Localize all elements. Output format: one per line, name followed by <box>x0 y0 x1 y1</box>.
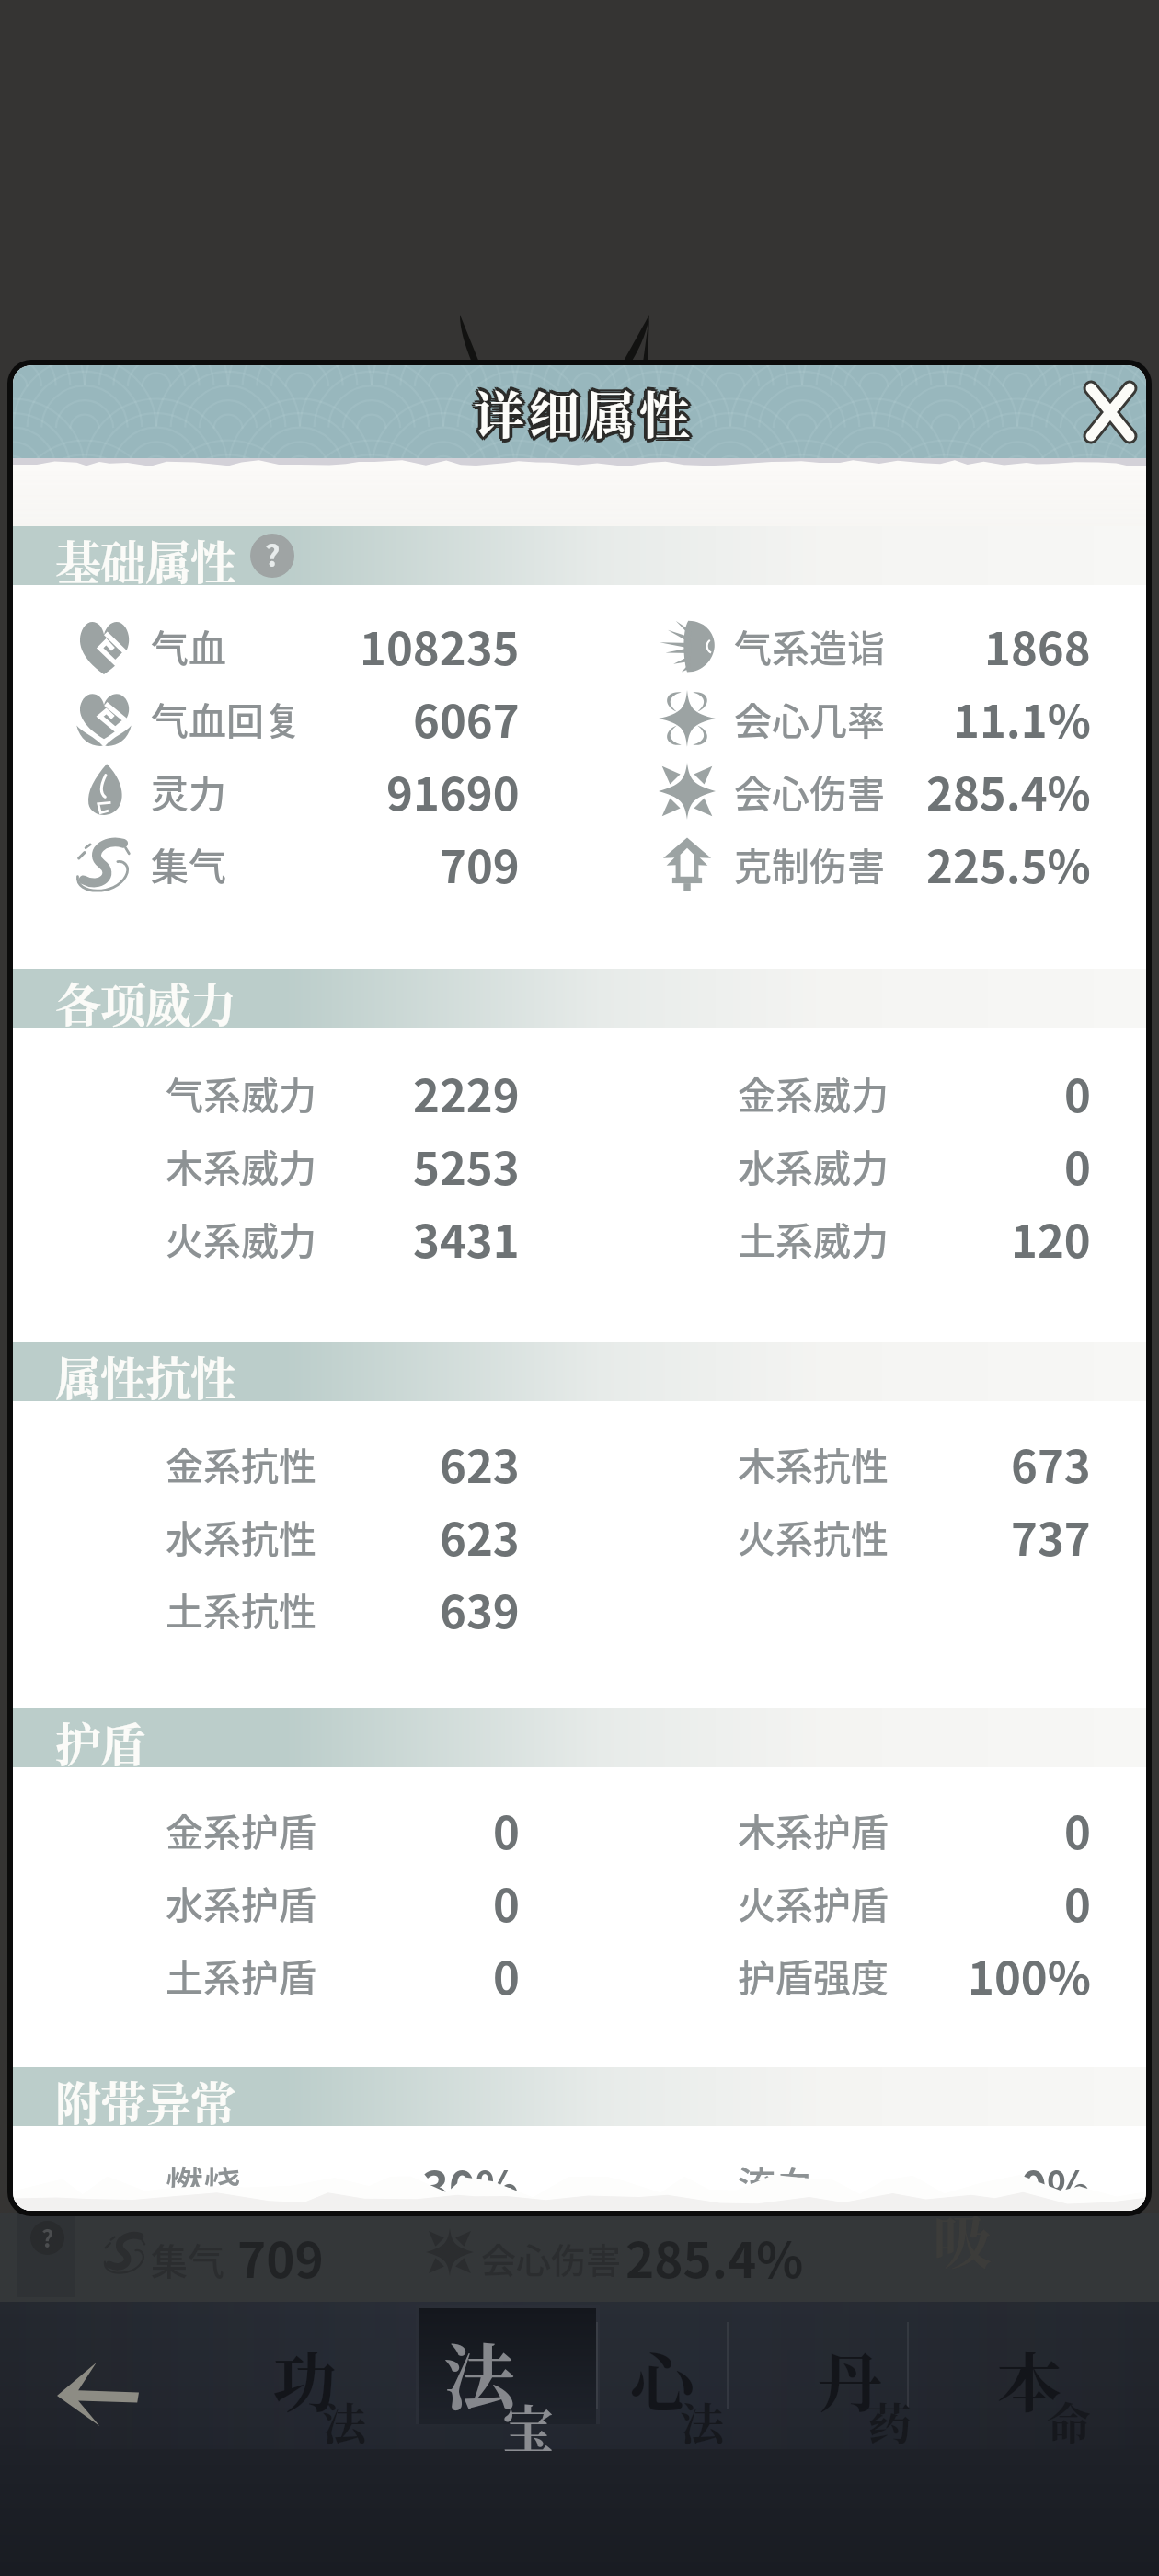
staticText: 木系抗性 <box>738 1436 889 1490</box>
staticText: 100% <box>968 1942 1091 2007</box>
staticText: 法 <box>322 2389 367 2453</box>
staticText: 30% <box>422 2152 520 2211</box>
staticText: 详细属性 <box>471 377 693 450</box>
staticText: 5253 <box>413 1133 520 1198</box>
staticText: 225.5% <box>926 831 1091 896</box>
button[interactable]: 本 <box>968 2305 1133 2466</box>
staticText: 详细属性 <box>473 379 694 452</box>
staticText: 气系威力 <box>166 1065 316 1120</box>
staticText: 燃烧 <box>166 2155 241 2209</box>
staticText: 水系护盾 <box>166 1875 316 1929</box>
button[interactable]: Help <box>250 534 294 578</box>
staticText: 护盾 <box>55 1708 145 1767</box>
staticText: 会心伤害 <box>481 2233 622 2283</box>
staticText: 丹 <box>818 2332 882 2425</box>
staticText: 金系威力 <box>738 1065 889 1120</box>
staticText: 气血回复 <box>151 691 302 745</box>
staticText: 11.1% <box>953 685 1091 751</box>
staticText: 709 <box>237 2222 324 2293</box>
staticText: 0 <box>1064 1060 1091 1125</box>
staticText: 详细属性 <box>470 375 692 448</box>
staticText: 本 <box>997 2332 1061 2425</box>
staticText: 木系威力 <box>166 1138 316 1192</box>
staticText: 心 <box>630 2332 694 2425</box>
staticText: 克制伤害 <box>734 836 885 891</box>
staticText: 120 <box>1011 1205 1091 1271</box>
staticText: 吸 <box>933 2195 992 2280</box>
staticText: 0 <box>493 1797 520 1862</box>
staticText: 灵力 <box>151 764 226 818</box>
staticText: 6067 <box>413 685 520 751</box>
staticText: 详细属性 <box>475 379 696 452</box>
staticText: 金系护盾 <box>166 1802 316 1857</box>
staticText: 会心几率 <box>734 691 885 745</box>
staticText: 623 <box>440 1503 520 1569</box>
staticText: 详细属性 <box>471 374 693 446</box>
button[interactable]: 法 <box>414 2305 579 2466</box>
staticText: 各项威力 <box>55 969 235 1028</box>
staticText: 土系护盾 <box>166 1948 316 2002</box>
staticText: ? <box>265 534 281 575</box>
staticText: 木系护盾 <box>738 1802 889 1857</box>
staticText: 火系护盾 <box>738 1875 889 1929</box>
staticText: 285.4% <box>625 2222 804 2293</box>
staticText: 土系抗性 <box>166 1581 316 1636</box>
staticText: 命 <box>1047 2389 1092 2453</box>
staticText: 285.4% <box>926 758 1091 823</box>
staticText: 属性抗性 <box>55 1342 235 1401</box>
staticText: 法 <box>443 2321 516 2424</box>
staticText: 108235 <box>360 613 520 678</box>
staticText: 流血 <box>738 2155 813 2209</box>
button[interactable]: 丹 <box>788 2305 954 2466</box>
staticText: 功 <box>272 2332 337 2425</box>
staticText: 气血 <box>151 618 226 673</box>
staticText: 0 <box>1064 1869 1091 1935</box>
button[interactable]: Back <box>28 2340 167 2448</box>
staticText: 详细属性 <box>474 375 695 448</box>
staticText: 709 <box>440 831 520 896</box>
staticText: 详细属性 <box>475 372 696 444</box>
button[interactable]: 功 <box>243 2305 408 2466</box>
staticText: 水系抗性 <box>166 1509 316 1563</box>
staticText: 气系造诣 <box>734 618 885 673</box>
staticText: 2229 <box>413 1060 520 1125</box>
button[interactable]: 心 <box>601 2305 766 2466</box>
staticText: 会心伤害 <box>734 764 885 818</box>
staticText: 详细属性 <box>477 375 699 448</box>
staticText: 详细属性 <box>476 374 698 446</box>
staticText: 3431 <box>413 1205 520 1271</box>
staticText: 金系抗性 <box>166 1436 316 1490</box>
staticText: 0% <box>1020 2152 1091 2211</box>
staticText: 护盾强度 <box>738 1948 889 2002</box>
staticText: 火系抗性 <box>738 1509 889 1563</box>
staticText: 0 <box>1064 1133 1091 1198</box>
staticText: 1868 <box>984 613 1091 678</box>
staticText: 集气 <box>151 836 226 891</box>
staticText: 详细属性 <box>476 377 698 450</box>
staticText: 0 <box>493 1942 520 2007</box>
staticText: 集气 <box>151 2233 224 2286</box>
staticText: 623 <box>440 1431 520 1496</box>
staticText: 火系威力 <box>166 1211 316 1265</box>
staticText: 0 <box>493 1869 520 1935</box>
staticText: ? <box>41 2221 54 2254</box>
staticText: 详细属性 <box>473 372 694 444</box>
staticText: 宝 <box>502 2389 554 2463</box>
staticText: 法 <box>680 2389 725 2453</box>
staticText: 737 <box>1011 1503 1091 1569</box>
staticText: 639 <box>440 1576 520 1641</box>
staticText: 91690 <box>386 758 520 823</box>
staticText: 水系威力 <box>738 1138 889 1192</box>
staticText: 0 <box>1064 1797 1091 1862</box>
staticText: 药 <box>867 2389 912 2453</box>
staticText: 附带异常 <box>55 2067 235 2126</box>
button[interactable]: Close <box>1067 369 1146 455</box>
staticText: 673 <box>1011 1431 1091 1496</box>
staticText: 基础属性 <box>55 526 235 585</box>
staticText: 土系威力 <box>738 1211 889 1265</box>
